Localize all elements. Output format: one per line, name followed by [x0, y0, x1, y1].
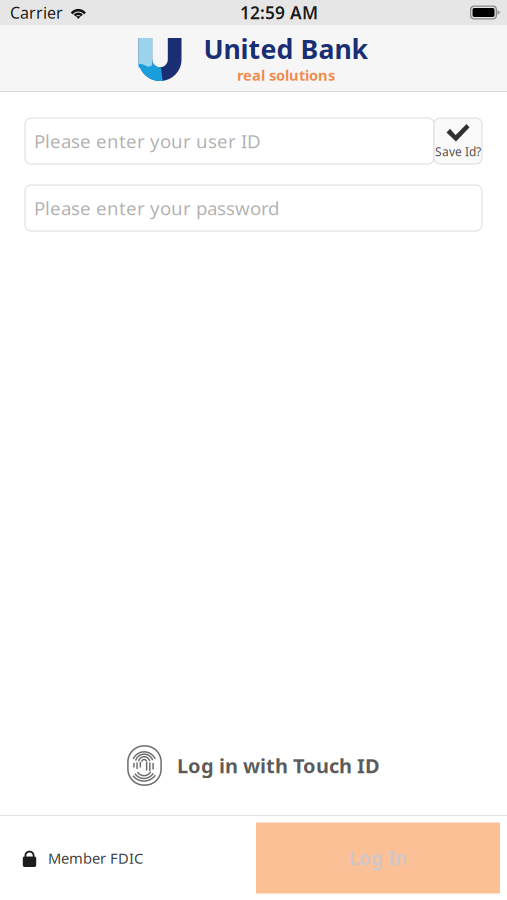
staticText: 12:59 AM	[240, 1, 318, 24]
staticText: Log In	[349, 846, 407, 870]
staticText: real solutions	[237, 65, 335, 85]
button[interactable]: Log in with Touch ID	[127, 739, 380, 792]
staticText: Save Id?	[435, 143, 481, 159]
staticText: Log in with Touch ID	[177, 752, 380, 779]
button[interactable]: Log In	[256, 822, 500, 893]
staticText: Please enter your user ID	[34, 129, 261, 153]
staticText: Member FDIC	[48, 848, 143, 868]
staticText: Please enter your password	[34, 196, 279, 220]
button[interactable]: Save Id?	[434, 118, 482, 164]
button[interactable]: Member FDIC	[0, 838, 143, 878]
staticText: Carrier	[10, 2, 63, 23]
staticText: United Bank	[203, 31, 368, 66]
